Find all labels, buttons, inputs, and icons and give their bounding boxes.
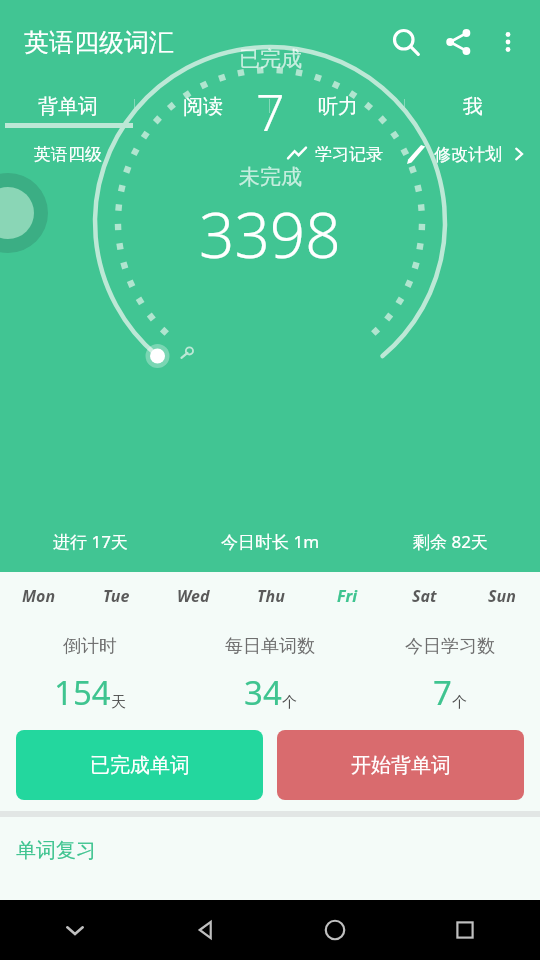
staticText: Sun [488, 585, 516, 607]
button[interactable]: 英语四级 [0, 128, 540, 180]
button[interactable]: Mon [0, 572, 78, 620]
button[interactable]: Sun [463, 572, 540, 620]
staticText: 3398 [199, 192, 341, 276]
button[interactable]: Recent apps [400, 900, 530, 960]
button[interactable]: 每日单词数 [180, 620, 360, 730]
staticText: 每日单词数 [225, 635, 315, 658]
button[interactable]: Wed [155, 572, 232, 620]
button[interactable]: 单词复习 [0, 817, 540, 883]
staticText: 个 [452, 693, 467, 712]
staticText: Tue [103, 585, 130, 607]
staticText: 修改计划 [434, 144, 502, 165]
staticText: Thu [257, 585, 285, 607]
staticText: 听力 [318, 94, 358, 119]
button[interactable]: 背单词 [0, 84, 135, 128]
staticText: Mon [22, 585, 56, 607]
button[interactable]: 阅读 [135, 84, 270, 128]
staticText: 背单词 [38, 94, 98, 119]
button[interactable]: Share [432, 16, 484, 68]
staticText: Wed [177, 585, 210, 607]
button[interactable]: 听力 [270, 84, 405, 128]
staticText: 进行 17天 [53, 530, 128, 553]
button[interactable]: Back [140, 900, 270, 960]
staticText: 7 [256, 78, 285, 146]
staticText: 我 [463, 94, 483, 119]
button[interactable]: Tue [78, 572, 155, 620]
button[interactable]: Home [270, 900, 400, 960]
button[interactable]: Search [380, 16, 432, 68]
button[interactable]: Sat [386, 572, 463, 620]
staticText: 个 [282, 693, 297, 712]
staticText: 英语四级词汇 [24, 27, 174, 58]
button[interactable]: Thu [232, 572, 309, 620]
staticText: 单词复习 [16, 838, 96, 863]
staticText: Sat [412, 585, 437, 607]
staticText: 7 [433, 670, 452, 715]
staticText: 天 [111, 693, 126, 712]
button[interactable]: More options [484, 18, 532, 66]
staticText: 学习记录 [315, 144, 383, 165]
staticText: 34 [244, 670, 282, 715]
staticText: 倒计时 [63, 635, 117, 658]
staticText: 已完成单词 [90, 753, 190, 778]
button[interactable]: 倒计时 [0, 620, 180, 730]
staticText: 剩余 82天 [413, 530, 488, 553]
button[interactable]: Fri [309, 572, 386, 620]
staticText: 阅读 [183, 94, 223, 119]
staticText: 英语四级 [34, 144, 102, 165]
button[interactable]: 今日学习数 [360, 620, 540, 730]
staticText: Fri [337, 585, 358, 607]
staticText: 开始背单词 [351, 753, 451, 778]
staticText: 今日时长 1m [221, 530, 320, 553]
staticText: 154 [54, 670, 111, 715]
button[interactable]: Hide keyboard [10, 900, 140, 960]
button[interactable]: 我 [405, 84, 540, 128]
staticText: 已完成 [239, 46, 302, 72]
button[interactable]: 已完成单词 [16, 730, 263, 800]
staticText: 未完成 [239, 164, 302, 190]
staticText: 今日学习数 [405, 635, 495, 658]
button[interactable]: 开始背单词 [277, 730, 524, 800]
